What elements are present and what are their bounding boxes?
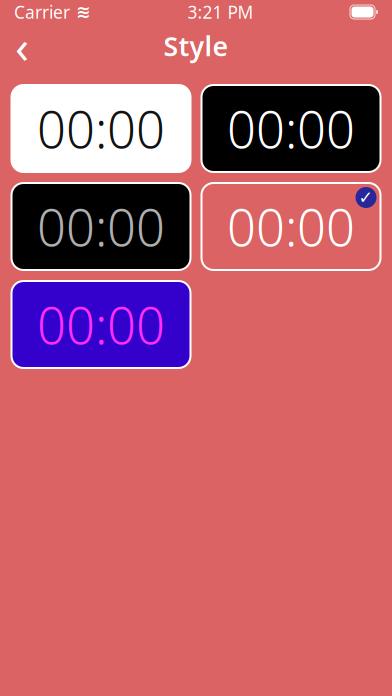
staticText: ‹ xyxy=(15,16,29,76)
staticText: 00:00 xyxy=(227,95,355,162)
staticText: 00:00 xyxy=(37,193,165,260)
staticText: ≋ xyxy=(70,2,91,22)
staticText: ✓ xyxy=(358,188,373,207)
button[interactable]: Back xyxy=(0,24,44,68)
staticText: Style xyxy=(163,28,228,64)
button[interactable]: 00:00 xyxy=(11,281,190,368)
staticText: Carrier xyxy=(14,0,70,23)
staticText: 00:00 xyxy=(227,193,355,260)
staticText: 00:00 xyxy=(37,291,165,358)
button[interactable]: 00:00 xyxy=(11,183,190,270)
staticText: 00:00 xyxy=(37,95,165,162)
button[interactable]: 00:00 xyxy=(11,85,190,172)
button[interactable]: 00:00 xyxy=(201,183,380,270)
button[interactable]: 00:00 xyxy=(201,85,380,172)
staticText: 3:21 PM xyxy=(187,0,253,23)
